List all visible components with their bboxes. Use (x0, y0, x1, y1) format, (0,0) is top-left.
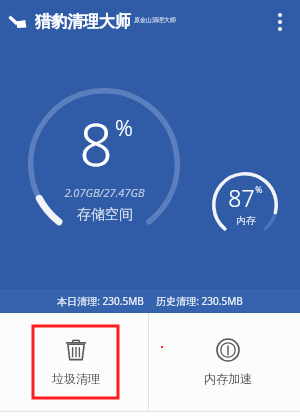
staticText: 猎豹清理大师 (35, 12, 131, 32)
staticText: 87 (228, 182, 255, 213)
staticText: % (115, 112, 133, 142)
staticText: 8 (79, 104, 113, 183)
button[interactable]: More options (260, 2, 300, 42)
staticText: 本日清理: 230.5MB (57, 294, 144, 308)
staticText: 历史清理: 230.5MB (156, 294, 243, 308)
staticText: 2.07GB/27.47GB (64, 185, 145, 200)
staticText: 内存 (236, 214, 256, 227)
staticText: 垃圾清理 (52, 371, 100, 386)
button[interactable]: 8 (28, 88, 180, 240)
staticText: 原金山清理大师 (134, 16, 176, 24)
button[interactable]: 内存加速 (185, 326, 270, 398)
staticText: 内存加速 (204, 371, 252, 386)
button[interactable]: 87 (212, 172, 278, 238)
staticText: 存储空间 (77, 206, 133, 224)
staticText: % (255, 183, 263, 195)
button[interactable]: 垃圾清理 (33, 326, 118, 398)
